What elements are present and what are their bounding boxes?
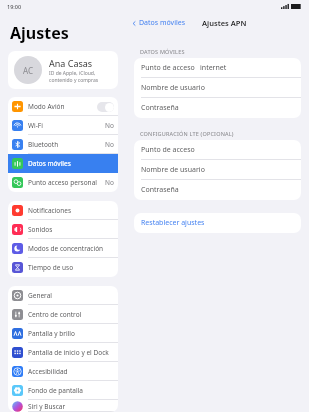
staticText: Datos móviles xyxy=(139,18,186,28)
staticText: Ajustes xyxy=(10,22,69,44)
staticText: AC xyxy=(23,65,34,76)
button[interactable]: Siri y Buscar xyxy=(8,400,118,412)
staticText: Datos móviles xyxy=(28,159,114,168)
staticText: Restablecer ajustes xyxy=(141,218,205,228)
button[interactable]: Tiempo de uso xyxy=(8,258,118,277)
staticText: Modos de concentración xyxy=(28,244,114,253)
staticText: Tiempo de uso xyxy=(28,263,114,272)
button[interactable]: Notificaciones xyxy=(8,201,118,220)
staticText: Accesibilidad xyxy=(28,367,114,376)
button[interactable]: Modo Avión xyxy=(8,97,118,116)
staticText: Pantalla de inicio y el Dock xyxy=(28,348,114,357)
button[interactable]: Accesibilidad xyxy=(8,362,118,381)
staticText: Contraseña xyxy=(141,103,179,113)
button[interactable]: Punto de acceso xyxy=(134,140,301,160)
button[interactable]: Fondo de pantalla xyxy=(8,381,118,400)
button[interactable]: Punto acceso personal xyxy=(8,173,118,192)
staticText: Contraseña xyxy=(141,185,179,195)
button[interactable]: Pantalla de inicio y el Dock xyxy=(8,343,118,362)
staticText: No xyxy=(105,178,114,187)
staticText: internet xyxy=(200,63,227,73)
staticText: No xyxy=(105,140,114,149)
button[interactable]: AC xyxy=(8,51,118,89)
button[interactable]: Restablecer ajustes xyxy=(134,213,301,233)
button[interactable]: Datos móviles xyxy=(8,154,118,173)
button[interactable]: Wi-Fi xyxy=(8,116,118,135)
staticText: 19:00 xyxy=(7,3,22,10)
staticText: Nombre de usuario xyxy=(141,83,205,93)
button[interactable]: Nombre de usuario xyxy=(134,78,301,98)
staticText: Punto de acceso xyxy=(141,145,195,155)
staticText: General xyxy=(28,291,114,300)
staticText: Ajustes APN xyxy=(202,18,247,28)
button[interactable]: Bluetooth xyxy=(8,135,118,154)
button[interactable]: Contraseña xyxy=(134,180,301,200)
staticText: Punto de acceso xyxy=(141,63,195,73)
staticText: Fondo de pantalla xyxy=(28,386,114,395)
button[interactable]: Contraseña xyxy=(134,98,301,118)
staticText: Wi-Fi xyxy=(28,121,105,130)
button[interactable]: Sonidos xyxy=(8,220,118,239)
staticText: CONFIGURACIÓN LTE (OPCIONAL) xyxy=(140,130,234,137)
staticText: DATOS MÓVILES xyxy=(140,48,185,55)
staticText: Pantalla y brillo xyxy=(28,329,114,338)
staticText: Punto acceso personal xyxy=(28,178,105,187)
staticText: No xyxy=(105,121,114,130)
other: Back xyxy=(131,20,138,27)
staticText: Centro de control xyxy=(28,310,114,319)
button[interactable]: Modos de concentración xyxy=(8,239,118,258)
button[interactable]: General xyxy=(8,286,118,305)
staticText: Sonidos xyxy=(28,225,114,234)
button[interactable]: Nombre de usuario xyxy=(134,160,301,180)
button[interactable]: Pantalla y brillo xyxy=(8,324,118,343)
button[interactable]: Back xyxy=(131,18,186,28)
staticText: Bluetooth xyxy=(28,140,105,149)
staticText: Ana Casas xyxy=(49,57,93,69)
staticText: Siri y Buscar xyxy=(28,402,114,411)
staticText: ID de Apple, iCloud, contenido y compras xyxy=(49,70,99,84)
button[interactable]: Punto de acceso xyxy=(134,58,301,78)
staticText: Notificaciones xyxy=(28,206,114,215)
button[interactable]: Centro de control xyxy=(8,305,118,324)
staticText: Modo Avión xyxy=(28,102,97,111)
staticText: Nombre de usuario xyxy=(141,165,205,175)
